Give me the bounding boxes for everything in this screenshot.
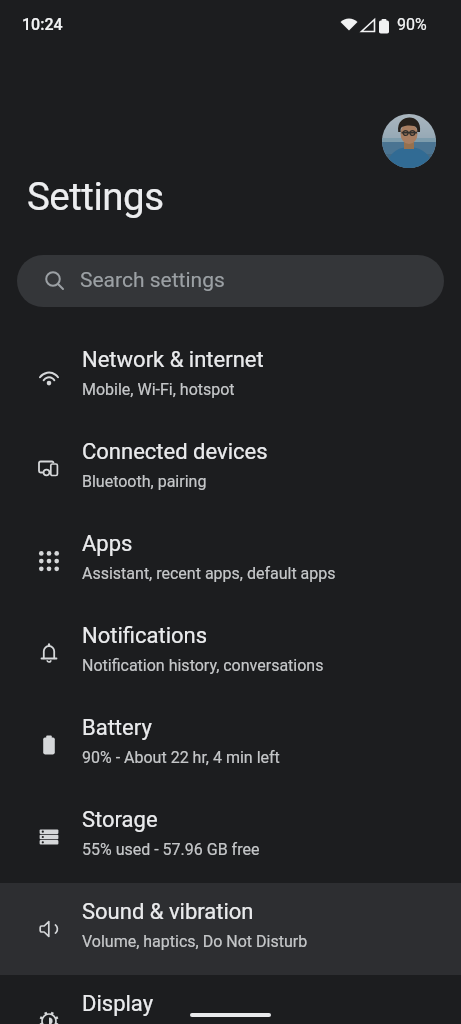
button[interactable]: Battery (0, 699, 461, 791)
staticText: Search settings (80, 268, 225, 293)
staticText: Mobile, Wi-Fi, hotspot (82, 380, 235, 399)
button[interactable]: Apps (0, 515, 461, 607)
staticText: Apps (82, 531, 133, 557)
staticText: Bluetooth, pairing (82, 472, 207, 491)
button[interactable]: Notifications (0, 607, 461, 699)
staticText: Settings (27, 174, 164, 219)
button[interactable]: Search settings (17, 255, 444, 307)
button[interactable]: Network & internet (0, 331, 461, 423)
staticText: 90% (397, 15, 427, 34)
staticText: Sound & vibration (82, 899, 254, 925)
button[interactable]: Storage (0, 791, 461, 883)
staticText: Notifications (82, 623, 208, 649)
staticText: Volume, haptics, Do Not Disturb (82, 932, 308, 951)
staticText: 55% used - 57.96 GB free (82, 840, 260, 859)
staticText: Network & internet (82, 347, 264, 373)
button[interactable]: Sound & vibration (0, 883, 461, 975)
staticText: Battery (82, 715, 152, 741)
staticText: Assistant, recent apps, default apps (82, 564, 336, 583)
staticText: Notification history, conversations (82, 656, 324, 675)
staticText: Display (82, 991, 154, 1017)
staticText: Connected devices (82, 439, 268, 465)
staticText: 90% - About 22 hr, 4 min left (82, 748, 280, 767)
staticText: 10:24 (22, 15, 63, 34)
button[interactable]: Connected devices (0, 423, 461, 515)
button[interactable]: Display (0, 975, 461, 1024)
button[interactable] (382, 114, 436, 168)
staticText: Storage (82, 807, 158, 833)
